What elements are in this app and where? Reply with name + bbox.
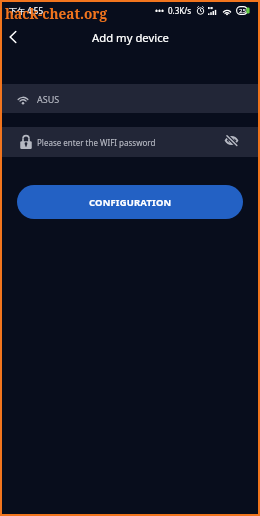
button[interactable]: Back — [2, 23, 30, 51]
staticText: ••• — [155, 5, 165, 16]
staticText: Add my device — [92, 30, 169, 45]
button[interactable]: ASUS — [2, 84, 258, 113]
staticText: ASUS — [37, 93, 60, 105]
staticText: 25 — [239, 7, 246, 15]
button[interactable]: CONFIGURATION — [17, 185, 243, 219]
staticText: 0.3K/s — [168, 5, 192, 16]
button[interactable]: Show password — [222, 132, 242, 152]
staticText: 下午 4:55 — [9, 5, 43, 16]
staticText: CONFIGURATION — [89, 196, 172, 209]
staticText: hack-cheat.org — [5, 4, 107, 23]
staticText: Please enter the WIFI password — [37, 137, 222, 148]
